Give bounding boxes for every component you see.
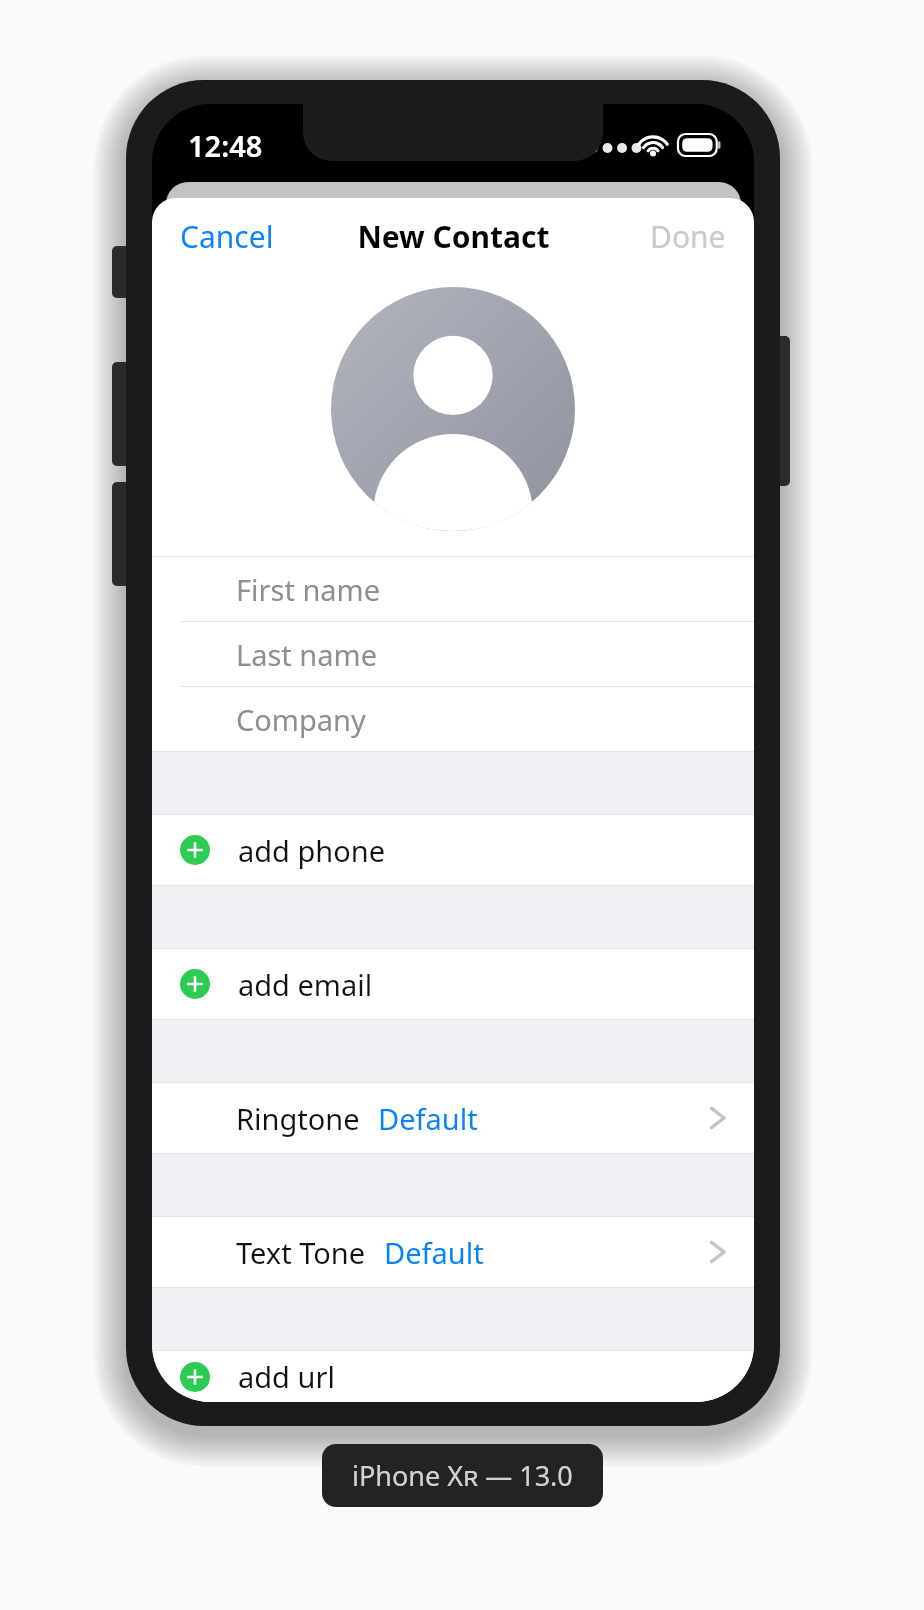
button[interactable]: add url	[152, 1351, 754, 1402]
staticText: Default	[378, 1099, 478, 1138]
staticText: add url	[238, 1357, 335, 1396]
button[interactable]: add phone	[152, 815, 754, 886]
staticText: add phone	[238, 831, 386, 870]
staticText: Last name	[236, 635, 378, 674]
button[interactable]: Done	[622, 204, 754, 269]
button[interactable]: Last name	[152, 622, 754, 687]
staticText: Done	[650, 216, 726, 257]
staticText: First name	[236, 570, 381, 609]
staticText: 12:48	[188, 126, 263, 165]
button[interactable]: Company	[152, 687, 754, 751]
staticText: Text Tone	[236, 1233, 366, 1272]
button[interactable]: add email	[152, 949, 754, 1020]
button[interactable]: Ringtone	[152, 1083, 754, 1154]
staticText: Default	[384, 1233, 484, 1272]
staticText: Ringtone	[236, 1099, 360, 1138]
button[interactable]: Add photo	[331, 287, 575, 531]
staticText: iPhone Xʀ — 13.0	[352, 1457, 573, 1494]
button[interactable]: Text Tone	[152, 1217, 754, 1288]
staticText: add email	[238, 965, 373, 1004]
staticText: Cancel	[180, 216, 274, 257]
button[interactable]: First name	[152, 557, 754, 622]
staticText: New Contact	[357, 216, 550, 257]
button[interactable]: Cancel	[152, 204, 302, 269]
staticText: Company	[236, 700, 366, 739]
